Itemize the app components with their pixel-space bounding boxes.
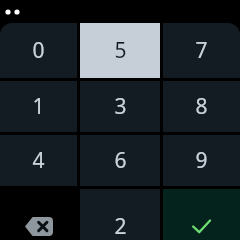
staticText: 6 bbox=[114, 146, 127, 175]
button[interactable]: 2 bbox=[80, 189, 160, 240]
button[interactable]: 1 bbox=[0, 81, 77, 132]
button[interactable]: 9 bbox=[163, 135, 240, 186]
staticText: 1 bbox=[32, 92, 45, 121]
button[interactable]: Backspace bbox=[0, 189, 77, 240]
staticText: 9 bbox=[195, 146, 208, 175]
button[interactable]: 6 bbox=[80, 135, 160, 186]
staticText: 5 bbox=[114, 36, 127, 65]
staticText: 4 bbox=[32, 146, 45, 175]
staticText: 7 bbox=[195, 36, 208, 65]
staticText: 2 bbox=[114, 212, 127, 240]
button[interactable]: 8 bbox=[163, 81, 240, 132]
staticText: 0 bbox=[32, 36, 45, 65]
button[interactable]: 7 bbox=[163, 23, 240, 78]
button[interactable]: Confirm bbox=[163, 189, 240, 240]
button[interactable]: 3 bbox=[80, 81, 160, 132]
button[interactable]: 5 bbox=[80, 23, 160, 78]
staticText: 8 bbox=[195, 92, 208, 121]
button[interactable]: 4 bbox=[0, 135, 77, 186]
staticText: 3 bbox=[114, 92, 127, 121]
button[interactable]: 0 bbox=[0, 23, 77, 78]
